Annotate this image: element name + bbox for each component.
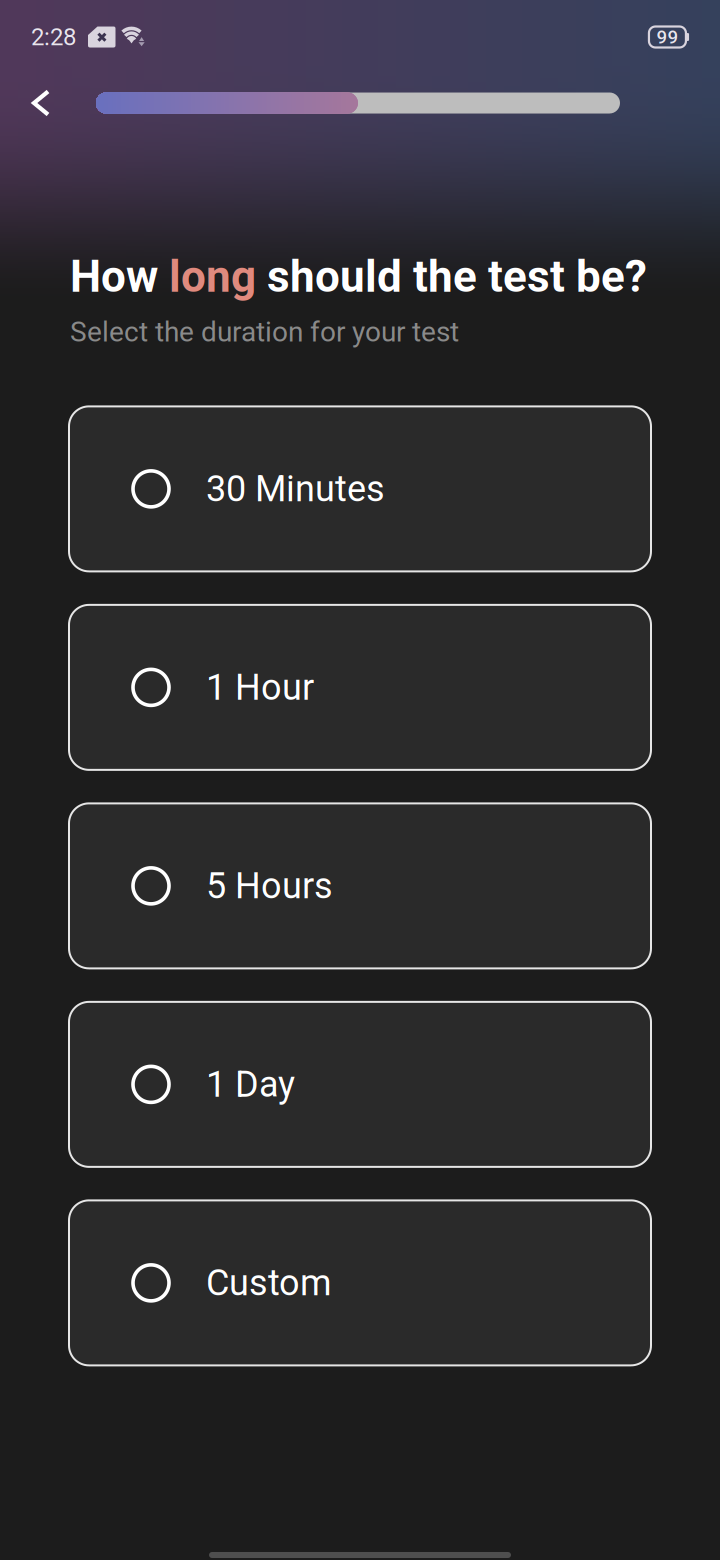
- staticText: long: [169, 251, 256, 303]
- button[interactable]: 30 Minutes: [69, 406, 651, 571]
- staticText: should the test be?: [256, 251, 647, 303]
- button[interactable]: 1 Hour: [69, 605, 651, 770]
- button[interactable]: 1 Day: [69, 1002, 651, 1167]
- staticText: 1 Day: [206, 1063, 295, 1105]
- staticText: 99: [656, 26, 678, 48]
- staticText: Custom: [206, 1262, 332, 1304]
- button[interactable]: Custom: [69, 1200, 651, 1365]
- button[interactable]: 5 Hours: [69, 803, 651, 968]
- button[interactable]: Back: [19, 81, 63, 125]
- staticText: 5 Hours: [206, 865, 333, 907]
- staticText: 1 Hour: [206, 666, 314, 708]
- staticText: 2:28: [31, 23, 76, 51]
- staticText: 30 Minutes: [206, 468, 385, 510]
- staticText: Select the duration for your test: [70, 316, 459, 348]
- staticText: How: [70, 251, 169, 303]
